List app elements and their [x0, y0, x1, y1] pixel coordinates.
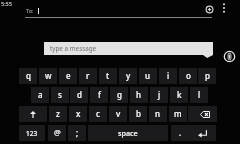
staticText: a — [38, 89, 43, 100]
staticText: f — [98, 89, 101, 100]
button[interactable]: a — [31, 87, 49, 103]
staticText: 5:55 — [1, 0, 12, 7]
button[interactable]: s — [51, 87, 69, 103]
button[interactable]: p — [198, 68, 216, 84]
button[interactable]: Enter — [188, 125, 216, 141]
button[interactable]: Backspace — [188, 106, 217, 122]
staticText: q — [26, 70, 31, 81]
staticText: w — [45, 70, 52, 81]
staticText: . — [179, 127, 182, 138]
button[interactable]: Shift — [19, 106, 47, 122]
button[interactable]: m — [169, 106, 187, 122]
staticText: space — [118, 128, 138, 138]
button[interactable]: 123 — [19, 125, 45, 141]
staticText: k — [177, 89, 182, 100]
staticText: y — [126, 70, 131, 81]
staticText: x — [76, 108, 81, 119]
staticText: e — [66, 70, 71, 81]
button[interactable]: space — [88, 125, 168, 141]
staticText: o — [186, 70, 191, 81]
button[interactable]: w — [39, 68, 57, 84]
staticText: d — [77, 89, 82, 100]
button[interactable]: c — [89, 106, 107, 122]
staticText: type a message — [50, 44, 97, 53]
button[interactable]: l — [190, 87, 208, 103]
button[interactable]: d — [70, 87, 88, 103]
button[interactable]: @ — [48, 125, 66, 141]
button[interactable]: type a message — [44, 42, 213, 55]
button[interactable]: o — [179, 68, 197, 84]
button[interactable]: e — [59, 68, 77, 84]
staticText: 123 — [26, 129, 38, 138]
button[interactable]: y — [119, 68, 137, 84]
button[interactable]: More options — [219, 1, 229, 14]
staticText: r — [86, 70, 90, 81]
button[interactable]: v — [109, 106, 127, 122]
staticText: h — [136, 89, 142, 100]
staticText: m — [174, 108, 182, 119]
staticText: z — [56, 108, 60, 119]
staticText: j — [158, 89, 161, 100]
button[interactable]: ; — [68, 125, 86, 141]
staticText: ; — [76, 127, 79, 138]
button[interactable]: i — [159, 68, 177, 84]
button[interactable]: h — [130, 87, 148, 103]
staticText: @ — [54, 127, 61, 137]
staticText: t — [106, 70, 110, 81]
staticText: v — [116, 108, 121, 119]
button[interactable]: n — [149, 106, 167, 122]
button[interactable]: Attach — [223, 50, 235, 62]
button[interactable]: . — [171, 125, 189, 141]
staticText: u — [145, 70, 151, 81]
button[interactable]: b — [129, 106, 147, 122]
staticText: c — [96, 108, 100, 119]
staticText: b — [136, 108, 141, 119]
button[interactable]: f — [90, 87, 108, 103]
staticText: n — [155, 108, 161, 119]
staticText: p — [205, 70, 210, 81]
button[interactable]: k — [170, 87, 188, 103]
staticText: s — [58, 89, 62, 100]
button[interactable]: t — [99, 68, 117, 84]
button[interactable]: q — [19, 68, 37, 84]
button[interactable]: x — [69, 106, 87, 122]
button[interactable]: g — [110, 87, 128, 103]
button[interactable]: z — [49, 106, 67, 122]
staticText: To: — [26, 7, 34, 15]
button[interactable]: j — [150, 87, 168, 103]
button[interactable]: r — [79, 68, 97, 84]
staticText: i — [167, 70, 170, 81]
staticText: l — [198, 89, 201, 100]
button[interactable]: u — [139, 68, 157, 84]
staticText: g — [117, 89, 122, 100]
button[interactable]: Add recipient — [203, 3, 215, 15]
